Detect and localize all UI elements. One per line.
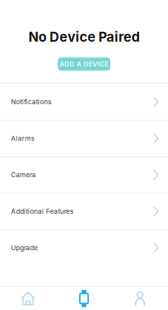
staticText: Upgrade [11,244,38,252]
button[interactable]: Device [56,287,112,310]
button[interactable]: Profile [112,287,168,310]
staticText: Additional Features [11,207,73,215]
button[interactable]: Home [0,287,56,310]
button[interactable]: ADD A DEVICE [58,57,110,70]
staticText: ADD A DEVICE [59,60,108,68]
staticText: Notifications [11,98,51,106]
button[interactable]: Camera [0,157,168,193]
staticText: Alarms [11,134,34,142]
staticText: Camera [11,171,36,179]
staticText: No Device Paired [28,29,139,45]
button[interactable]: Alarms [0,121,168,156]
button[interactable]: Upgrade [0,230,168,265]
button[interactable]: Additional Features [0,194,168,229]
button[interactable]: Notifications [0,84,168,120]
